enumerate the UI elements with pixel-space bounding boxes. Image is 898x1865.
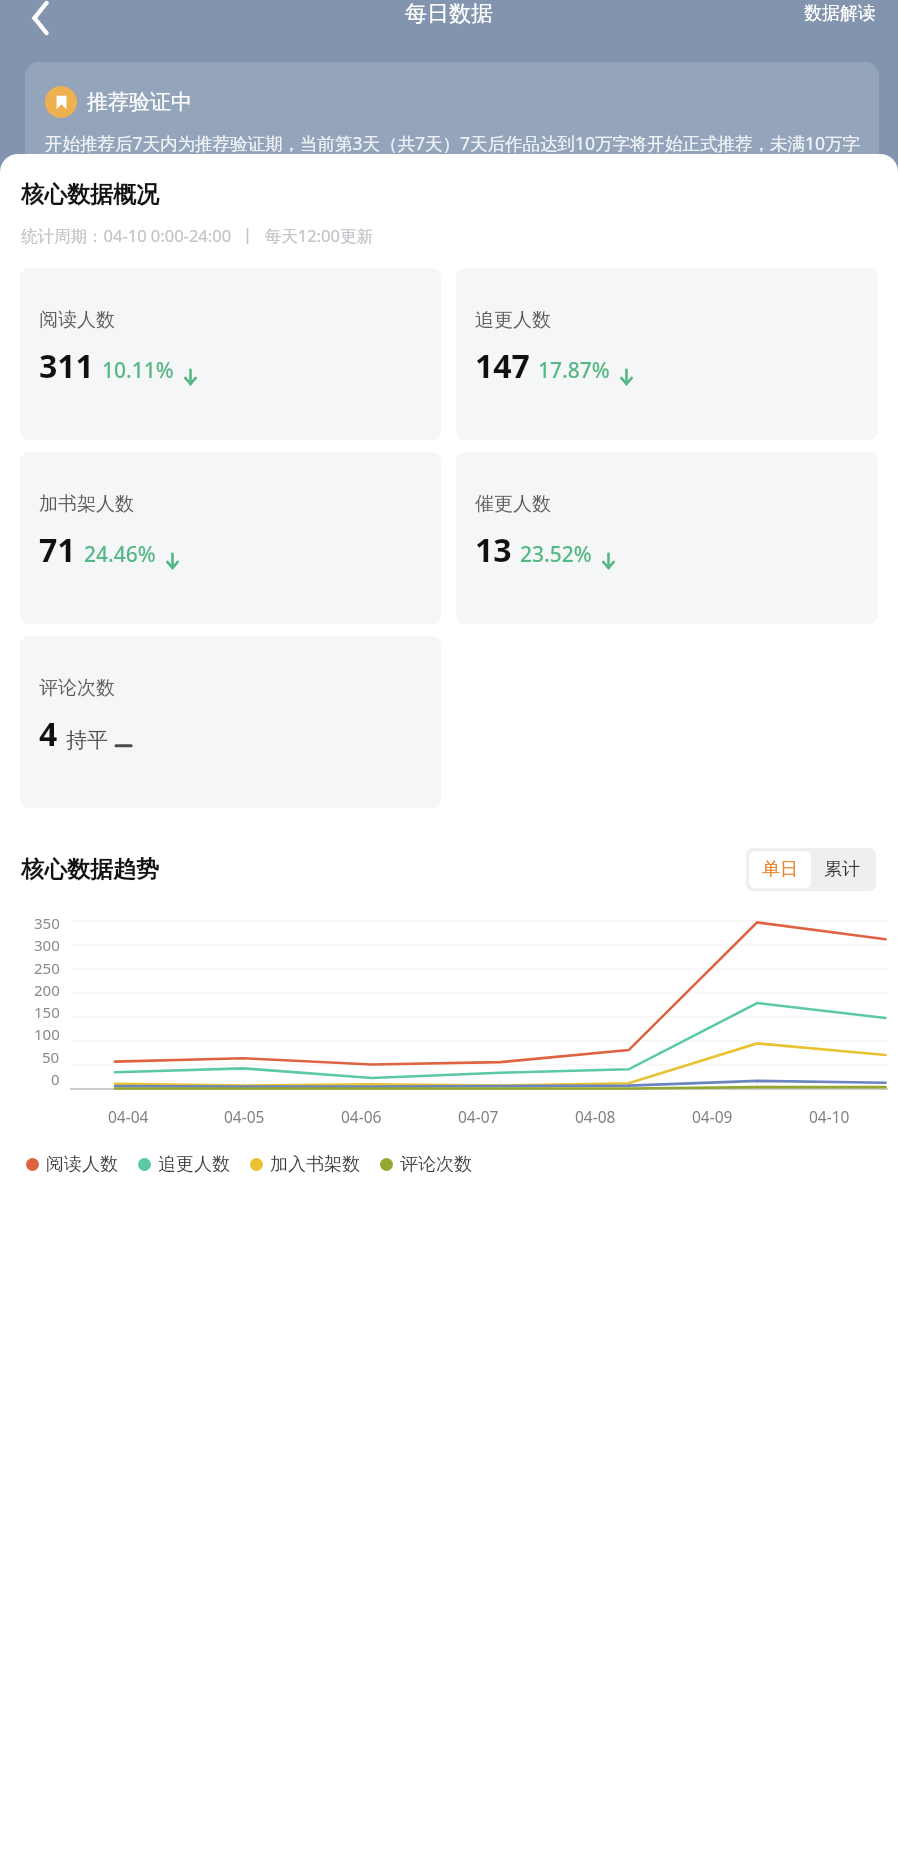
staticText: 持平 — [66, 727, 108, 753]
staticText: 0 — [51, 1069, 60, 1089]
staticText: 311 — [39, 344, 94, 388]
staticText: 评论次数 — [400, 1153, 472, 1176]
staticText: 71 — [39, 528, 76, 572]
staticText: 4 — [39, 712, 58, 756]
button[interactable]: 加书架人数 — [20, 452, 441, 624]
staticText: 阅读人数 — [46, 1153, 118, 1176]
staticText: 单日 — [762, 858, 798, 881]
staticText: 04-09 — [692, 1106, 733, 1127]
staticText: 24.46% — [84, 540, 156, 569]
staticText: 04-06 — [341, 1106, 382, 1127]
button[interactable]: 数据解读 — [796, 0, 884, 27]
staticText: 17.87% — [538, 356, 610, 385]
staticText: 04-08 — [575, 1106, 616, 1127]
button[interactable]: 阅读人数 — [20, 268, 441, 440]
staticText: 每日数据 — [405, 0, 493, 28]
staticText: 开始推荐后7天内为推荐验证期，当前第3天（共7天）7天后作品达到10万字将开始正… — [45, 131, 861, 185]
staticText: 04-07 — [458, 1106, 499, 1127]
staticText: 追更人数 — [475, 308, 551, 332]
staticText: 10.11% — [102, 356, 174, 385]
staticText: 250 — [34, 958, 60, 978]
button[interactable]: 评论次数 — [20, 636, 441, 808]
staticText: 催更人数 — [475, 492, 551, 516]
button[interactable]: Back — [8, 0, 66, 50]
button[interactable]: 单日 — [749, 851, 811, 888]
staticText: 04-10 — [809, 1106, 850, 1127]
button[interactable]: 推荐验证中 — [25, 62, 879, 312]
staticText: 加入书架数 — [270, 1153, 360, 1176]
staticText: 数据解读 — [804, 2, 876, 25]
staticText: 追更人数 — [158, 1153, 230, 1176]
staticText: 300 — [34, 935, 60, 955]
button[interactable]: 累计 — [811, 851, 873, 888]
staticText: 350 — [34, 913, 60, 933]
staticText: 累计 — [824, 858, 860, 881]
staticText: 100 — [34, 1024, 60, 1044]
staticText: 统计周期：04-10 0:00-24:00 丨 每天12:00更新 — [21, 224, 373, 247]
staticText: 13 — [475, 528, 512, 572]
staticText: 评论次数 — [39, 676, 115, 700]
staticText: 50 — [42, 1047, 60, 1067]
staticText: 核心数据趋势 — [21, 855, 159, 884]
button[interactable]: 追更人数 — [456, 268, 878, 440]
staticText: 147 — [475, 344, 530, 388]
staticText: 200 — [34, 980, 60, 1000]
staticText: 加书架人数 — [39, 492, 134, 516]
button[interactable]: 催更人数 — [456, 452, 878, 624]
staticText: 核心数据概况 — [21, 180, 159, 209]
staticText: 推荐验证中 — [87, 89, 192, 115]
staticText: 04-04 — [108, 1106, 149, 1127]
staticText: 150 — [34, 1002, 60, 1022]
staticText: 阅读人数 — [39, 308, 115, 332]
staticText: 04-05 — [224, 1106, 265, 1127]
staticText: 23.52% — [520, 540, 592, 569]
